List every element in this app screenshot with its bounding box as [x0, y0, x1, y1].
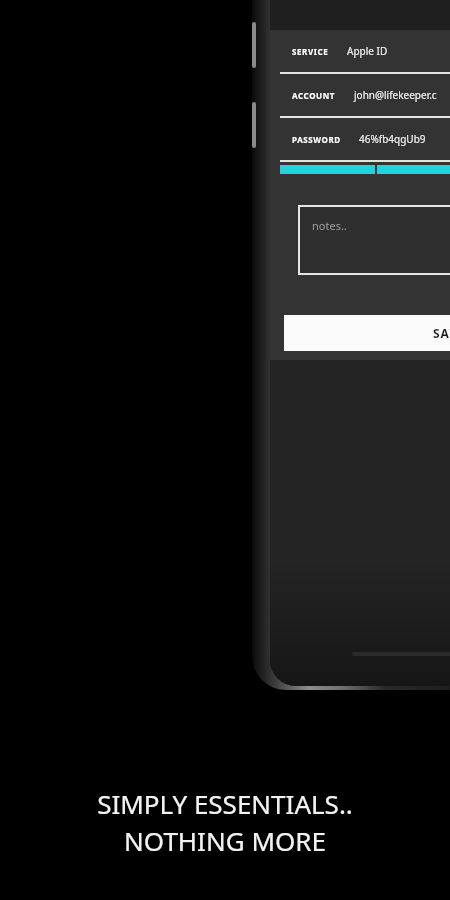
staticText: Apple ID [347, 44, 388, 58]
staticText: PASSWORD [292, 134, 341, 145]
staticText: NOTHING MORE [124, 823, 326, 858]
staticText: 46%fb4qgUb9 [359, 132, 426, 146]
other: Power button [252, 102, 256, 148]
other: Volume button [252, 22, 256, 68]
staticText: SAVE [433, 325, 450, 341]
staticText: ACCOUNT [292, 90, 336, 101]
staticText: notes.. [312, 218, 347, 233]
button[interactable]: ACCOUNT [270, 74, 450, 116]
staticText: SERVICE [292, 46, 329, 57]
staticText: john@lifekeeper.c [354, 88, 437, 102]
button[interactable]: SERVICE [270, 30, 450, 72]
button[interactable]: SAVE [284, 315, 450, 351]
button[interactable]: notes.. [298, 205, 450, 275]
staticText: SIMPLY ESSENTIALS.. [97, 786, 353, 821]
button[interactable]: PASSWORD [270, 118, 450, 160]
